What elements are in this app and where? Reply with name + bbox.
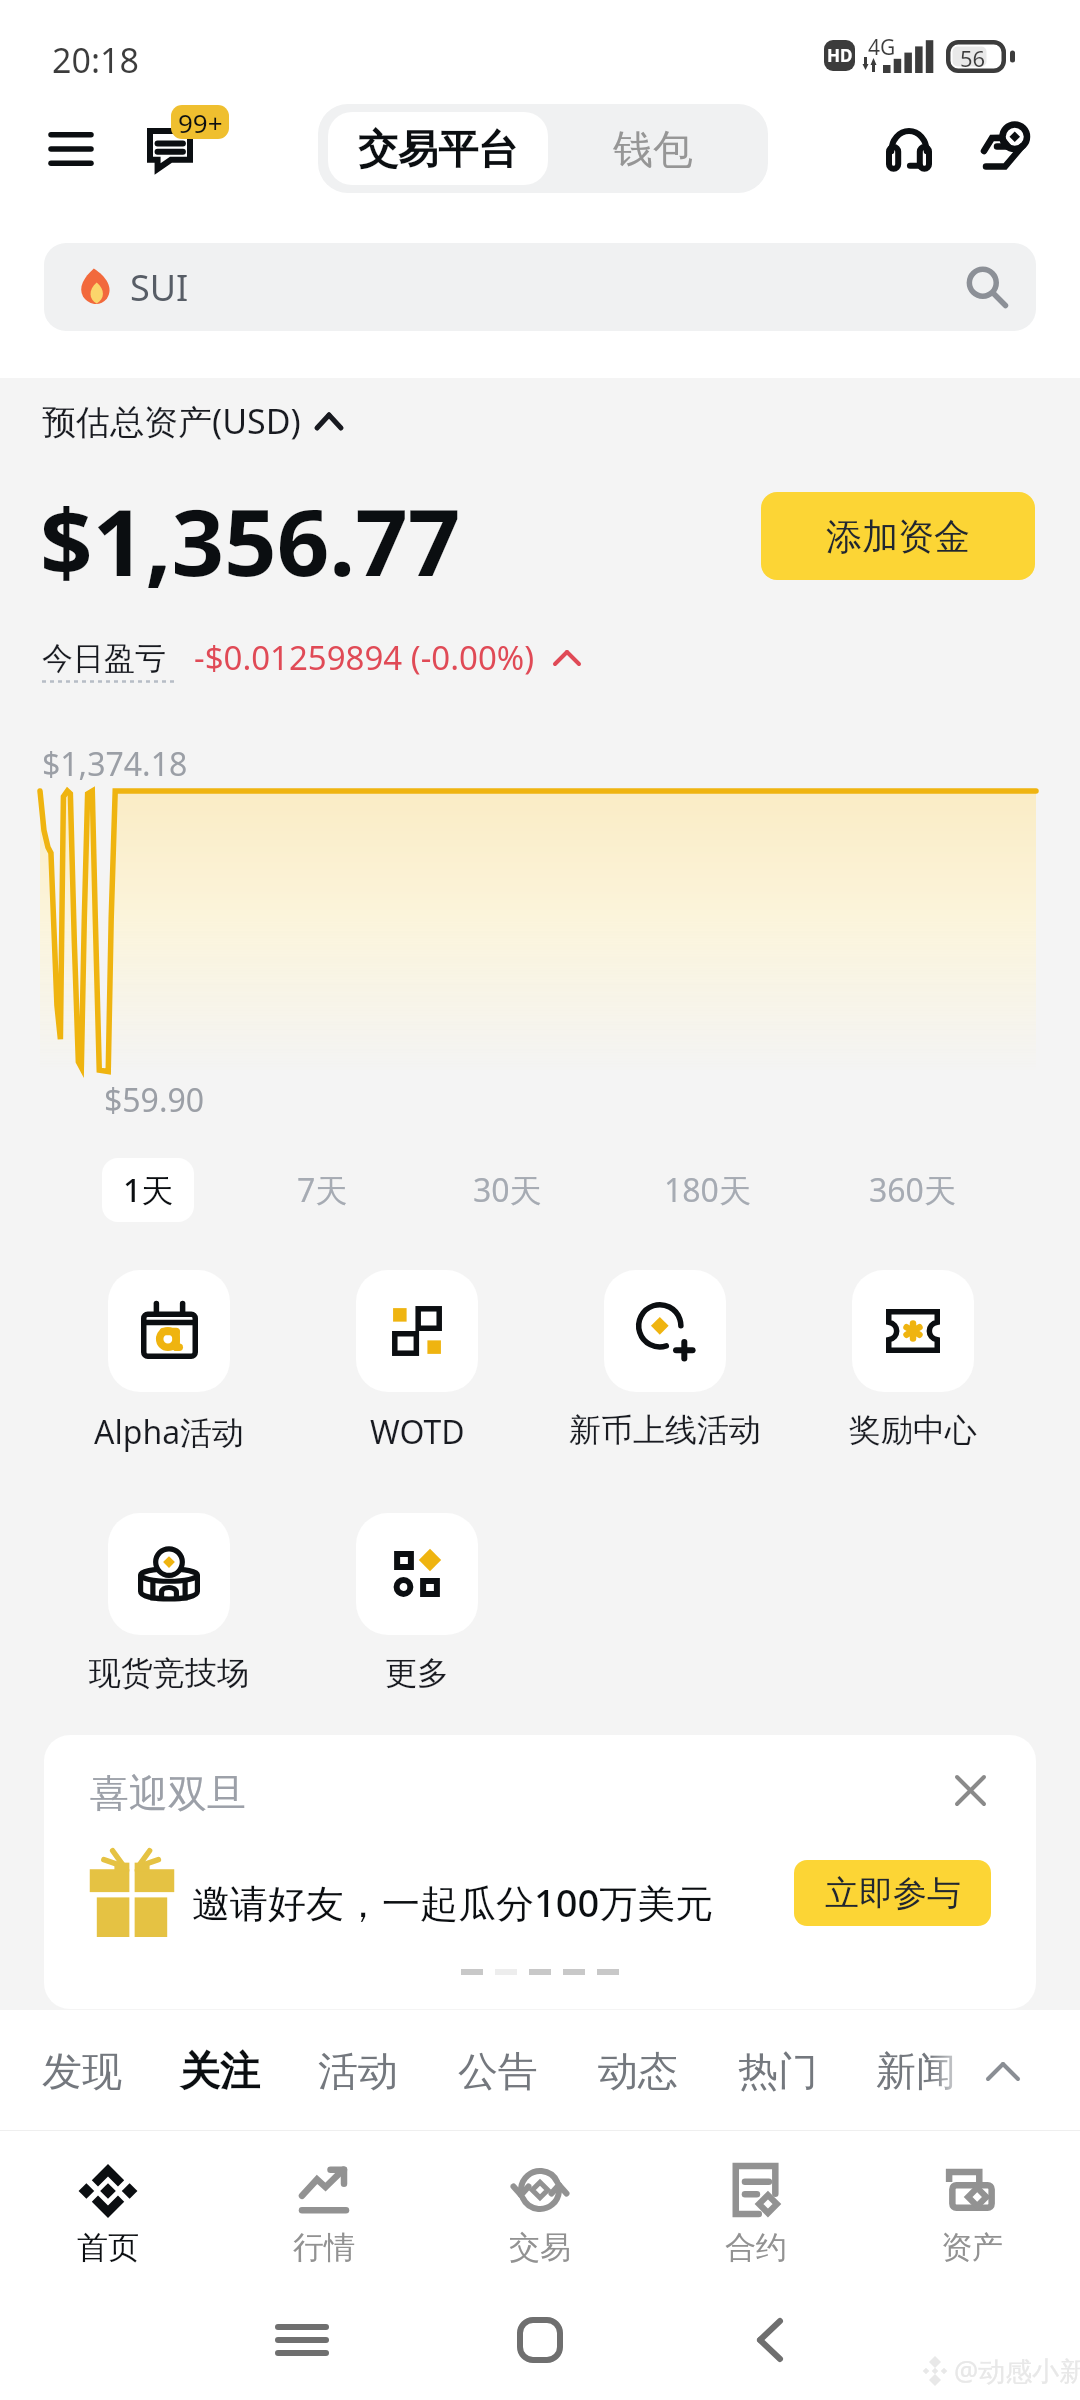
staticText: 56 [960, 43, 986, 73]
button[interactable]: 奖励中心 [788, 1270, 1038, 1450]
staticText: 30天 [473, 1168, 542, 1212]
staticText: 交易平台 [358, 124, 518, 174]
staticText: Alpha活动 [94, 1410, 245, 1454]
button[interactable]: 现货竞技场 [44, 1513, 294, 1693]
button[interactable]: 活动 [308, 2012, 408, 2130]
staticText: 合约 [725, 2228, 787, 2267]
staticText: $1,374.18 [42, 742, 188, 786]
button[interactable]: 首页 [0, 2145, 216, 2280]
staticText: 360天 [869, 1168, 956, 1212]
staticText: -$0.01259894 (-0.00%) [194, 635, 535, 680]
button[interactable]: Alpha活动 [44, 1270, 294, 1454]
staticText: 180天 [664, 1168, 751, 1212]
staticText: WOTD [370, 1410, 465, 1454]
button[interactable]: 动态 [588, 2012, 688, 2130]
staticText: @动感小新 [954, 2352, 1080, 2389]
staticText: HD [827, 44, 853, 67]
staticText: 更多 [385, 1653, 449, 1693]
button[interactable]: 新币上线活动 [540, 1270, 790, 1450]
staticText: 新闻 [876, 2046, 956, 2096]
staticText: 奖励中心 [849, 1410, 977, 1450]
staticText: 动态 [598, 2046, 678, 2096]
button[interactable]: 360天 [853, 1158, 972, 1222]
staticText: 99+ [178, 105, 223, 139]
button[interactable]: Recents [262, 2300, 342, 2380]
staticText: 4G [868, 33, 896, 62]
button[interactable]: 公告 [448, 2012, 548, 2130]
staticText: 今日盈亏 [42, 639, 166, 678]
staticText: 预估总资产(USD) [42, 398, 301, 444]
button[interactable]: 30天 [457, 1158, 558, 1222]
button[interactable]: 预估总资产(USD) [42, 398, 343, 444]
staticText: 活动 [318, 2046, 398, 2096]
button[interactable]: WOTD [292, 1270, 542, 1454]
button[interactable]: 新闻 [866, 2012, 966, 2130]
staticText: 立即参与 [825, 1872, 961, 1915]
button[interactable]: 行情 [216, 2145, 432, 2280]
staticText: 7天 [297, 1168, 348, 1212]
button[interactable]: 7天 [281, 1158, 364, 1222]
button[interactable]: Home [500, 2300, 580, 2380]
staticText: 交易 [509, 2228, 571, 2267]
button[interactable]: 交易平台 [328, 112, 548, 185]
staticText: 新币上线活动 [569, 1410, 761, 1450]
staticText: 行情 [293, 2228, 355, 2267]
staticText: 钱包 [613, 124, 693, 174]
button[interactable]: SUI [44, 243, 1036, 331]
staticText: SUI [130, 263, 189, 312]
staticText: 热门 [738, 2046, 818, 2096]
staticText: 邀请好友，一起瓜分100万美元 [192, 1876, 714, 1928]
button[interactable]: 立即参与 [794, 1860, 991, 1926]
button[interactable]: 钱包 [548, 112, 758, 185]
staticText: 首页 [77, 2228, 139, 2267]
button[interactable]: 1天 [102, 1158, 194, 1222]
button[interactable]: 合约 [648, 2145, 864, 2280]
button[interactable]: 发现 [32, 2012, 132, 2130]
staticText: 喜迎双旦 [90, 1769, 246, 1818]
button[interactable]: 资产 [864, 2145, 1080, 2280]
button[interactable]: Customer support [865, 109, 953, 189]
button[interactable]: 关注 [170, 2012, 270, 2130]
button[interactable]: Rewards [963, 104, 1051, 192]
staticText: 现货竞技场 [89, 1653, 249, 1693]
staticText: 资产 [941, 2228, 1003, 2267]
staticText: 1天 [123, 1168, 174, 1212]
staticText: $1,356.77 [40, 478, 461, 603]
button[interactable]: 添加资金 [761, 492, 1035, 580]
button[interactable]: 热门 [728, 2012, 828, 2130]
button[interactable]: Collapse [968, 2012, 1038, 2130]
button[interactable]: Menu [27, 113, 115, 185]
staticText: 关注 [180, 2046, 260, 2096]
button[interactable]: 交易 [432, 2145, 648, 2280]
button[interactable]: 180天 [648, 1158, 767, 1222]
staticText: 20:18 [52, 37, 139, 83]
staticText: 添加资金 [826, 514, 970, 559]
button[interactable]: Messages [133, 98, 243, 186]
staticText: $59.90 [104, 1078, 205, 1122]
button[interactable]: 更多 [292, 1513, 542, 1693]
button[interactable]: Close [938, 1758, 1002, 1822]
staticText: 发现 [42, 2046, 122, 2096]
staticText: 公告 [458, 2046, 538, 2096]
button[interactable]: Back [730, 2300, 810, 2380]
